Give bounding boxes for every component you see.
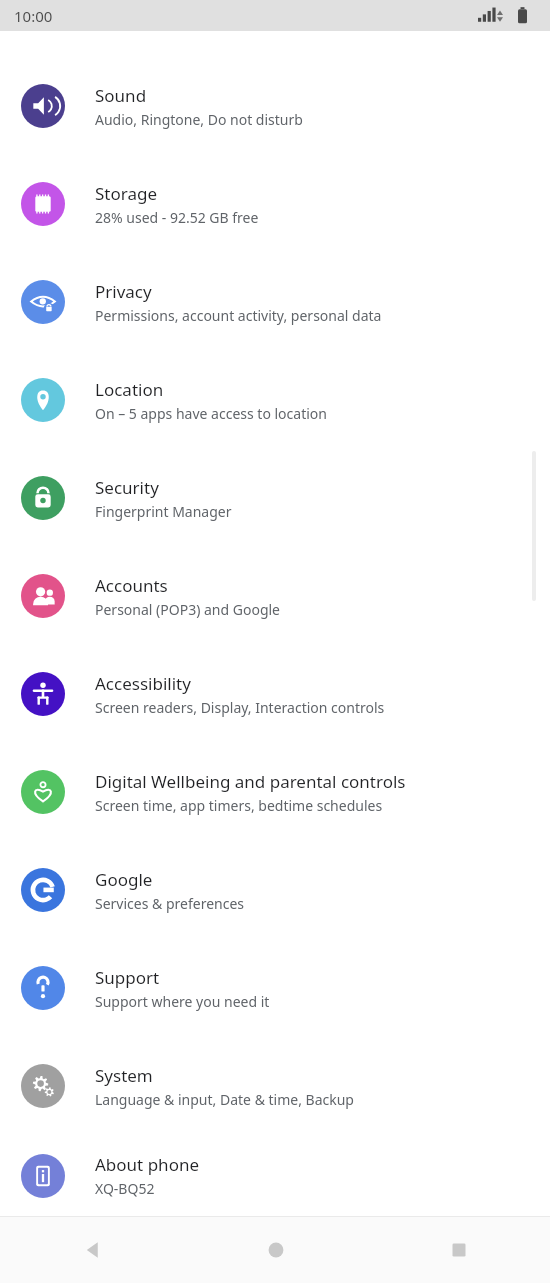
staticText: Permissions, account activity, personal … — [95, 306, 382, 325]
staticText: 28% used - 92.52 GB free — [95, 208, 259, 227]
button[interactable]: Accessibility — [0, 645, 550, 743]
staticText: Accessibility — [95, 672, 191, 695]
button[interactable]: Google — [0, 841, 550, 939]
staticText: Language & input, Date & time, Backup — [95, 1090, 354, 1109]
button[interactable]: Support — [0, 939, 550, 1037]
staticText: Services & preferences — [95, 894, 245, 913]
button[interactable]: Storage — [0, 155, 550, 253]
staticText: Support — [95, 966, 160, 989]
staticText: Fingerprint Manager — [95, 502, 232, 521]
staticText: Location — [95, 378, 164, 401]
staticText: Personal (POP3) and Google — [95, 600, 281, 619]
button[interactable]: Privacy — [0, 253, 550, 351]
staticText: 10:00 — [14, 6, 53, 26]
button[interactable]: Recent apps — [367, 1217, 550, 1283]
button[interactable]: Location — [0, 351, 550, 449]
staticText: Sound — [95, 84, 147, 107]
staticText: Security — [95, 476, 159, 499]
staticText: Screen readers, Display, Interaction con… — [95, 698, 385, 717]
staticText: Support where you need it — [95, 992, 270, 1011]
staticText: Google — [95, 868, 153, 891]
button[interactable]: Home — [184, 1217, 367, 1283]
button[interactable]: Digital Wellbeing and parental controls — [0, 743, 550, 841]
staticText: About phone — [95, 1153, 200, 1176]
button[interactable]: Accounts — [0, 547, 550, 645]
button[interactable]: Back — [0, 1217, 184, 1283]
staticText: Screen time, app timers, bedtime schedul… — [95, 796, 383, 815]
staticText: XQ-BQ52 — [95, 1179, 155, 1198]
staticText: On – 5 apps have access to location — [95, 404, 327, 423]
staticText: Audio, Ringtone, Do not disturb — [95, 110, 303, 129]
staticText: Privacy — [95, 280, 152, 303]
button[interactable]: Sound — [0, 57, 550, 155]
button[interactable]: About phone — [0, 1135, 550, 1216]
button[interactable]: System — [0, 1037, 550, 1135]
button[interactable]: Security — [0, 449, 550, 547]
staticText: Accounts — [95, 574, 168, 597]
staticText: Digital Wellbeing and parental controls — [95, 770, 406, 793]
staticText: Storage — [95, 182, 158, 205]
staticText: System — [95, 1064, 153, 1087]
